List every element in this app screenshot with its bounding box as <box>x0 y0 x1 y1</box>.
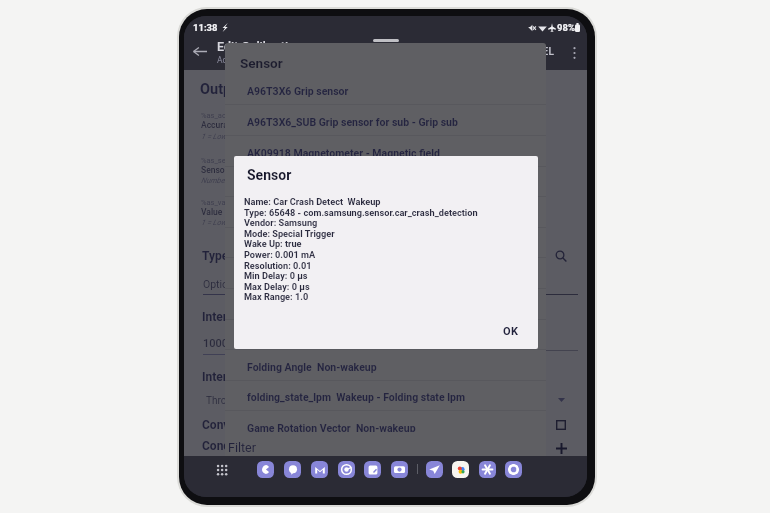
button[interactable]: Stop <box>549 413 573 437</box>
button[interactable]: Photos <box>452 461 469 478</box>
button[interactable]: Weather <box>479 461 496 478</box>
staticText: Call Gesture Non-wakeup <box>247 238 370 250</box>
staticText: 1 = Low <box>201 218 227 227</box>
button[interactable]: CANCEL <box>509 42 559 62</box>
button[interactable]: Folding Angle Non-wakeup <box>225 350 546 381</box>
staticText: Value <box>201 207 223 217</box>
button[interactable]: Search <box>549 244 573 268</box>
staticText: Accuracy <box>201 120 237 130</box>
staticText: Min Delay: 0 µs <box>244 270 308 281</box>
staticText: Type <box>202 249 229 263</box>
staticText: Edit Calibration <box>217 39 303 54</box>
staticText: Interval <box>202 370 243 384</box>
staticText: Power: 0.001 mA <box>244 249 316 260</box>
button[interactable]: Device Orientation Non-wakeup <box>225 289 546 320</box>
button[interactable]: All apps <box>211 459 231 479</box>
button[interactable]: Notes <box>364 461 381 478</box>
staticText: Vendor: Samsung <box>244 217 318 228</box>
staticText: Max Delay: 0 µs <box>244 281 310 292</box>
button[interactable]: OK <box>489 320 533 342</box>
staticText: Option <box>203 278 234 290</box>
staticText: Device Orientation Non-wakeup <box>247 300 399 312</box>
staticText: Car Crash Detect Wakeup <box>247 269 370 281</box>
staticText: Number <box>201 176 227 185</box>
staticText: A96T3X6_SUB Grip sensor for sub - Grip s… <box>247 116 458 128</box>
staticText: CANCEL <box>514 46 555 58</box>
staticText: Resolution: 0.01 <box>244 260 312 271</box>
button[interactable]: Car Crash Detect Wakeup <box>225 258 546 289</box>
staticText: Name: Car Crash Detect Wakeup <box>244 196 381 207</box>
staticText: %as_value <box>201 198 236 207</box>
button[interactable]: Camera <box>391 461 408 478</box>
button[interactable]: A96T3X6 Grip sensor <box>225 74 546 105</box>
staticText: Sensor <box>201 165 228 175</box>
button[interactable]: AK09918 Magnetometer - Magnetic field <box>225 136 546 167</box>
staticText: Interval <box>202 310 243 324</box>
staticText: %as_sensor <box>201 156 241 165</box>
button[interactable]: Gmail <box>311 461 328 478</box>
staticText: Max Range: 1.0 <box>244 291 309 302</box>
button[interactable]: Accelerometer Wakeup <box>225 197 546 228</box>
button[interactable]: Call Gesture Non-wakeup <box>225 227 546 258</box>
staticText: Filter <box>228 440 256 455</box>
button[interactable]: Add <box>549 436 573 460</box>
staticText: Type: 65648 - com.samsung.sensor.car_cra… <box>244 207 478 218</box>
staticText: Game Rotation Vector Non-wakeup <box>247 422 416 432</box>
staticText: 11:38 <box>193 22 218 33</box>
button[interactable]: Messages <box>284 461 301 478</box>
staticText: Convert <box>202 418 245 432</box>
staticText: Mode: Special Trigger <box>244 228 335 239</box>
button[interactable]: Phone <box>257 461 274 478</box>
staticText: %as_accel_x <box>201 111 243 120</box>
button[interactable]: More options <box>562 40 587 65</box>
button[interactable]: Telegram <box>426 461 443 478</box>
button[interactable]: Flat Detector Non-wakeup <box>225 319 546 350</box>
button[interactable]: A96T3X6_SUB Grip sensor for sub - Grip s… <box>225 105 546 136</box>
staticText: 1 = Low <box>201 132 227 141</box>
button[interactable]: Game Rotation Vector Non-wakeup <box>225 411 546 432</box>
staticText: A96T3X6 Grip sensor <box>247 85 349 97</box>
staticText: AK09918 Magnetometer - Magnetic field <box>247 147 440 159</box>
staticText: Output <box>200 81 245 98</box>
button[interactable]: Accelerometer Non-wakeup <box>225 166 546 197</box>
staticText: Throttle <box>206 395 241 407</box>
staticText: Accelerometer Non-wakeup <box>247 177 382 189</box>
staticText: Accelerometer Wakeup <box>247 208 360 220</box>
staticText: 1000 <box>203 337 229 350</box>
button[interactable]: folding_state_lpm Wakeup - Folding state… <box>225 380 546 411</box>
staticText: Sensor <box>247 167 292 183</box>
button[interactable]: Settings <box>505 461 522 478</box>
staticText: Wake Up: true <box>244 238 302 249</box>
button[interactable]: Chrome <box>338 461 355 478</box>
staticText: Folding Angle Non-wakeup <box>247 361 377 373</box>
button[interactable]: Back <box>187 38 213 64</box>
staticText: folding_state_lpm Wakeup - Folding state… <box>247 391 465 403</box>
staticText: Accelerometer <box>217 55 273 65</box>
staticText: Sensor <box>240 55 283 71</box>
staticText: Condition <box>202 439 255 453</box>
staticText: OK <box>503 325 519 338</box>
staticText: 98% <box>557 22 575 33</box>
